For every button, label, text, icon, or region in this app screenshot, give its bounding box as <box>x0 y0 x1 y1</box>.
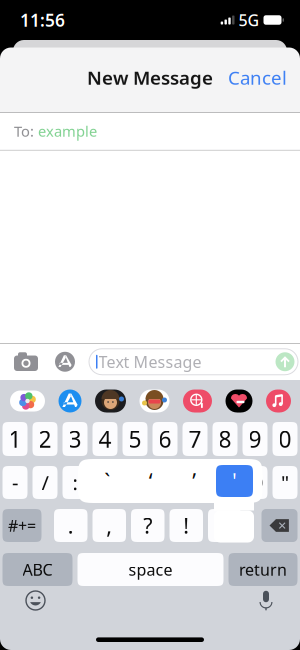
staticText: Cancel <box>228 65 287 90</box>
staticText: ` <box>104 467 110 495</box>
button[interactable]: Emoji keyboard <box>25 590 46 611</box>
staticText: × <box>278 515 286 535</box>
staticText: 8 <box>218 424 231 454</box>
staticText: ABC <box>22 559 52 580</box>
button[interactable]: . <box>54 509 87 542</box>
button[interactable]: Apps <box>52 352 78 372</box>
button[interactable]: Music <box>266 389 291 412</box>
button[interactable]: : <box>62 466 87 499</box>
staticText: 9 <box>248 424 261 454</box>
staticText: 5 <box>128 424 141 454</box>
button[interactable]: 6 <box>152 422 177 456</box>
button[interactable]: 5 <box>122 422 147 456</box>
staticText: 11:56 <box>20 8 65 31</box>
button[interactable]: " <box>272 466 297 499</box>
button[interactable]: Send <box>275 352 294 371</box>
staticText: , <box>106 511 112 540</box>
button[interactable]: - <box>2 466 27 499</box>
button[interactable]: @ <box>242 466 267 499</box>
button[interactable]: ` <box>85 465 129 497</box>
staticText: 2 <box>38 424 51 454</box>
button[interactable]: Image search <box>183 389 212 412</box>
staticText: Text Message <box>98 351 201 372</box>
staticText: @ <box>246 469 264 496</box>
button[interactable]: Digital Touch <box>225 389 252 412</box>
button[interactable]: 0 <box>272 422 297 456</box>
button[interactable]: Photos <box>10 390 45 411</box>
button[interactable]: ‘ <box>129 465 172 497</box>
staticText: 7 <box>188 424 201 454</box>
button[interactable]: Dictate <box>257 590 275 611</box>
button[interactable]: ' <box>208 509 241 542</box>
button[interactable]: ? <box>131 509 164 542</box>
button[interactable]: Camera <box>11 353 41 371</box>
staticText: 6 <box>158 424 171 454</box>
button[interactable]: 7 <box>182 422 207 456</box>
staticText: . <box>68 511 74 540</box>
button[interactable]: Memoji <box>139 389 169 412</box>
staticText: ’ <box>192 467 196 495</box>
button[interactable]: 1 <box>2 422 27 456</box>
button[interactable]: ABC <box>2 553 72 586</box>
staticText: 4 <box>98 424 111 454</box>
button[interactable]: ' <box>216 465 253 497</box>
button[interactable]: & <box>212 466 237 499</box>
button[interactable]: , <box>92 509 126 542</box>
button[interactable]: Memoji <box>95 389 126 412</box>
staticText: #+= <box>8 515 36 536</box>
button[interactable]: Cancel <box>215 60 300 94</box>
button[interactable]: return <box>228 553 297 586</box>
button[interactable]: #+= <box>2 509 41 542</box>
staticText: / <box>41 469 48 496</box>
button[interactable]: space <box>77 553 223 586</box>
button[interactable]: ; <box>92 466 117 499</box>
button[interactable]: App Store <box>58 389 81 412</box>
staticText: ? <box>143 511 152 540</box>
button[interactable]: $ <box>182 466 207 499</box>
button[interactable]: 9 <box>242 422 267 456</box>
staticText: space <box>128 559 172 580</box>
staticText: " <box>281 469 289 496</box>
staticText: $ <box>189 469 200 496</box>
button[interactable]: ’ <box>172 465 216 497</box>
staticText: 5G <box>238 9 259 31</box>
staticText: 1 <box>8 424 21 454</box>
staticText: ! <box>183 511 189 540</box>
staticText: - <box>12 469 18 496</box>
button[interactable]: 8 <box>212 422 237 456</box>
staticText: To: <box>14 121 34 141</box>
button[interactable]: / <box>32 466 57 499</box>
button[interactable]: 4 <box>92 422 117 456</box>
staticText: ' <box>232 467 237 495</box>
button[interactable]: ) <box>152 466 177 499</box>
staticText: return <box>239 559 287 580</box>
staticText: example <box>38 121 97 141</box>
staticText: 0 <box>278 424 291 454</box>
button[interactable]: Delete <box>261 509 297 542</box>
staticText: : <box>72 469 77 496</box>
staticText: ‘ <box>149 467 153 495</box>
button[interactable]: 3 <box>62 422 87 456</box>
staticText: 3 <box>68 424 81 454</box>
staticText: ; <box>102 469 107 496</box>
staticText: New Message <box>87 65 213 90</box>
button[interactable]: 2 <box>32 422 57 456</box>
button[interactable]: ! <box>169 509 203 542</box>
